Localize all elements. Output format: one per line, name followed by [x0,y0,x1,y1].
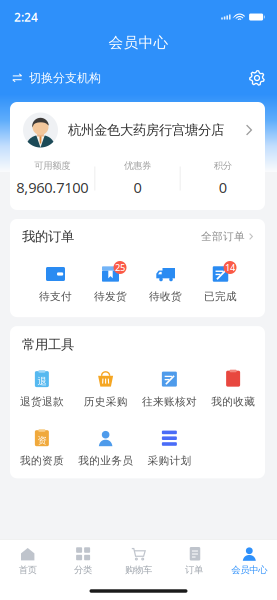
staticText: 我的资质 [20,454,64,467]
staticText: 我的订单 [22,228,74,245]
staticText: 分类 [74,564,92,576]
staticText: 14 [225,261,235,274]
staticText: 资 [37,435,46,446]
staticText: 杭州金色大药房行宫塘分店 [68,122,224,138]
button[interactable]: 首页 [0,542,55,580]
button[interactable]: 待支付 [28,261,83,303]
button[interactable]: 待收货 [138,261,193,303]
staticText: 会员中心 [231,564,267,576]
staticText: 已完成 [204,290,237,303]
staticText: 退货退款 [20,395,64,408]
staticText: 退 [37,376,46,387]
button[interactable]: 全部订单 [201,230,253,243]
staticText: 0 [219,177,227,197]
staticText: 全部订单 [201,230,245,243]
button[interactable]: 分类 [55,542,111,580]
staticText: 常用工具 [22,336,74,353]
button[interactable] [201,370,265,408]
staticText: 0 [133,177,141,197]
button[interactable]: 设置 [237,62,277,94]
button[interactable]: 购物车 [111,542,166,580]
staticText: 8,960.7100 [16,177,88,197]
button[interactable]: 14 [193,261,248,303]
button[interactable]: 采购计划 [137,429,201,467]
button[interactable]: 切换分支机构 [0,62,113,94]
staticText: 往来账核对 [142,395,197,408]
staticText: 采购计划 [147,454,191,467]
button[interactable]: 订单 [166,542,222,580]
button[interactable]: 我的业务员 [74,429,138,467]
staticText: 我的收藏 [211,395,255,408]
staticText: 我的业务员 [78,454,133,467]
staticText: 待收货 [149,290,182,303]
staticText: 购物车 [125,564,152,576]
button[interactable]: 杭州金色大药房行宫塘分店 [10,102,265,158]
staticText: 首页 [19,564,37,576]
staticText: 可用额度 [34,160,70,171]
button[interactable]: 往来账核对 [137,370,201,408]
button[interactable]: 退 [10,370,74,408]
staticText: 历史采购 [84,395,128,408]
staticText: 会员中心 [108,33,168,51]
staticText: 积分 [214,160,232,171]
button[interactable]: 会员中心 [222,542,277,580]
button[interactable]: 25 [83,261,138,303]
staticText: 待支付 [39,290,72,303]
button[interactable]: 资 [10,429,74,467]
staticText: 25 [115,261,125,274]
staticText: 切换分支机构 [29,71,101,85]
staticText: 2:24 [14,9,38,25]
button[interactable]: 历史采购 [74,370,138,408]
staticText: 订单 [185,564,203,576]
staticText: 优惠券 [124,160,151,171]
staticText: 待发货 [94,290,127,303]
